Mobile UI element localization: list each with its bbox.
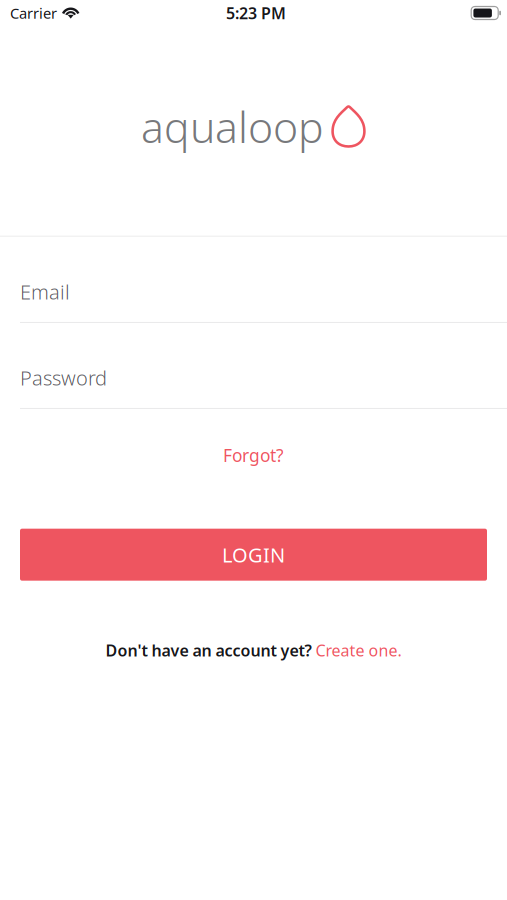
button[interactable]: Email [0,271,507,323]
staticText: Password [20,364,107,391]
staticText: Don't have an account yet? [105,640,315,661]
staticText: Forgot? [223,444,284,467]
staticText: LOGIN [222,541,285,568]
button[interactable]: LOGIN [20,529,487,581]
staticText: 5:23 PM [226,2,286,24]
button[interactable]: Forgot? [209,439,298,472]
staticText: Carrier [10,3,57,23]
staticText: Create one. [315,640,401,661]
button[interactable]: Create one. [315,640,401,661]
button[interactable]: Password [0,357,507,409]
staticText: Email [20,278,70,305]
staticText: aqualoop [141,98,324,155]
